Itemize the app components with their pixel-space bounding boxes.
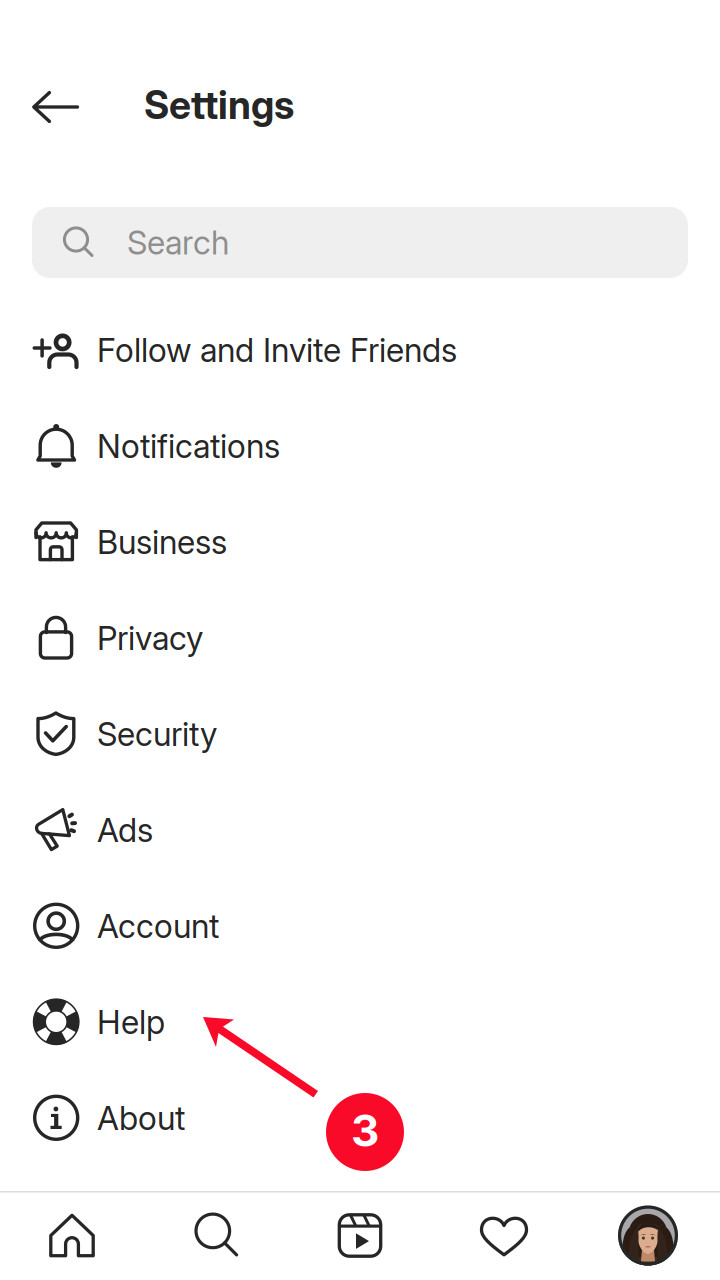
button[interactable]: Account: [0, 878, 720, 974]
staticText: Account: [97, 906, 219, 946]
button[interactable]: Search: [192, 1211, 240, 1259]
button[interactable]: Notifications: [0, 398, 720, 494]
button[interactable]: Security: [0, 686, 720, 782]
button[interactable]: Home: [48, 1211, 96, 1259]
staticText: Ads: [97, 810, 153, 850]
button[interactable]: Search: [0, 207, 720, 278]
button[interactable]: Follow and Invite Friends: [0, 302, 720, 398]
button[interactable]: Reels: [336, 1211, 384, 1259]
staticText: Security: [97, 714, 217, 754]
button[interactable]: Profile: [624, 1211, 672, 1259]
staticText: 3: [351, 1104, 379, 1157]
staticText: Settings: [144, 82, 294, 128]
button[interactable]: Business: [0, 494, 720, 590]
staticText: Follow and Invite Friends: [97, 330, 457, 370]
staticText: Privacy: [97, 618, 203, 658]
staticText: Business: [97, 522, 227, 562]
button[interactable]: Likes: [480, 1211, 528, 1259]
button[interactable]: Help: [0, 974, 720, 1070]
button[interactable]: Back: [31, 79, 83, 131]
button[interactable]: Ads: [0, 782, 720, 878]
staticText: Search: [127, 223, 229, 262]
staticText: About: [97, 1098, 185, 1138]
button[interactable]: About: [0, 1070, 720, 1166]
staticText: Help: [97, 1002, 165, 1042]
staticText: Notifications: [97, 426, 280, 466]
button[interactable]: Privacy: [0, 590, 720, 686]
